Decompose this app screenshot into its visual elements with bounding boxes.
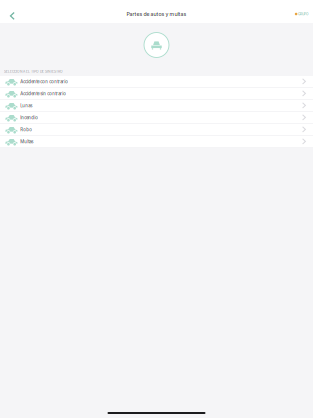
button[interactable]: Logotipo [295, 9, 308, 19]
staticText: Accidente con contrario [20, 79, 68, 84]
button[interactable]: Atrás [3, 7, 21, 25]
button[interactable]: Incendio [0, 112, 313, 124]
button[interactable]: Accidente con contrario [0, 76, 313, 88]
staticText: Accidente sin contrario [20, 91, 66, 96]
staticText: Robo [20, 127, 32, 132]
staticText: Lunas [20, 103, 32, 108]
staticText: Multas [20, 139, 33, 144]
staticText: Incendio [20, 115, 38, 120]
button[interactable]: Accidente sin contrario [0, 88, 313, 100]
button[interactable]: Robo [0, 124, 313, 136]
button[interactable]: Multas [0, 136, 313, 148]
staticText: GRUPO [298, 12, 308, 16]
staticText: SELECCIONA EL TIPO DE SINIESTRO [4, 69, 63, 73]
staticText: Partes de autos y multas [126, 11, 186, 17]
button[interactable]: Lunas [0, 100, 313, 112]
